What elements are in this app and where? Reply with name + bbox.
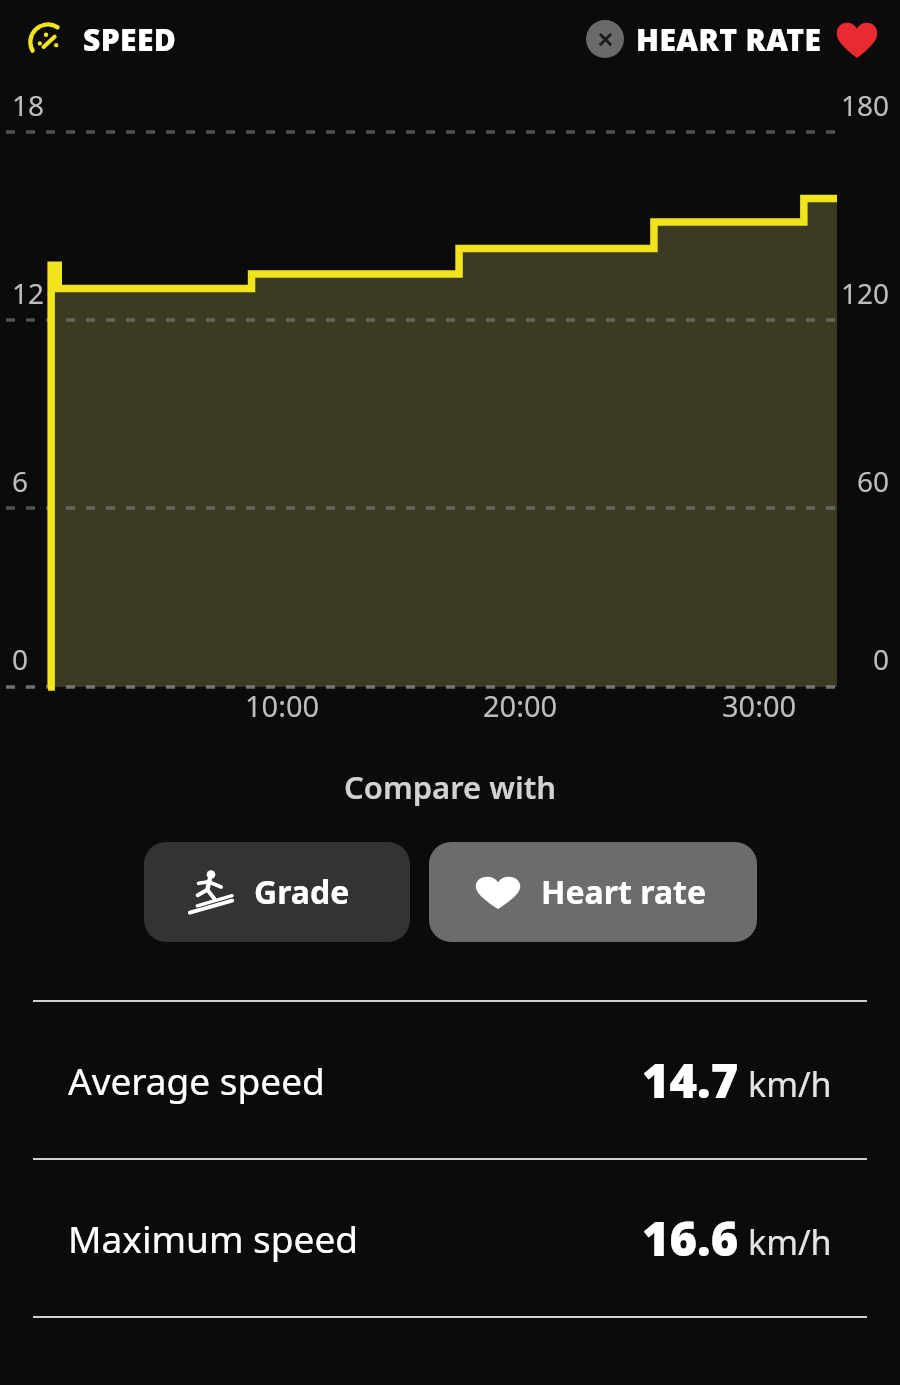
staticText: 10:00 — [245, 686, 320, 725]
staticText: 30:00 — [722, 686, 797, 725]
staticText: SPEED — [83, 19, 177, 60]
button[interactable]: Speed — [26, 17, 177, 61]
other: Speed — [26, 17, 70, 61]
staticText: Heart rate — [541, 870, 707, 914]
button[interactable]: Grade — [144, 842, 410, 942]
button[interactable]: Average speed — [0, 1002, 900, 1158]
button[interactable]: Heart rate — [429, 842, 757, 942]
staticText: Average speed — [68, 1055, 325, 1105]
staticText: 20:00 — [483, 686, 558, 725]
staticText: Maximum speed — [68, 1213, 359, 1263]
staticText: 16.6 — [642, 1206, 739, 1270]
button[interactable]: HEART RATE — [636, 19, 822, 60]
staticText: 18 — [12, 86, 45, 124]
button[interactable]: Maximum speed — [0, 1160, 900, 1316]
staticText: 60 — [857, 462, 890, 500]
staticText: 6 — [12, 462, 29, 500]
other: Heart rate — [836, 18, 878, 60]
staticText: km/h — [748, 1219, 832, 1265]
staticText: 12 — [12, 274, 45, 312]
staticText: km/h — [748, 1061, 832, 1107]
button[interactable]: Remove heart rate — [586, 20, 624, 58]
staticText: 0 — [12, 640, 29, 678]
staticText: 120 — [841, 274, 890, 312]
staticText: Compare with — [344, 766, 557, 808]
staticText: 0 — [873, 640, 890, 678]
staticText: 14.7 — [642, 1048, 739, 1112]
staticText: 180 — [841, 86, 890, 124]
staticText: Grade — [254, 870, 350, 914]
